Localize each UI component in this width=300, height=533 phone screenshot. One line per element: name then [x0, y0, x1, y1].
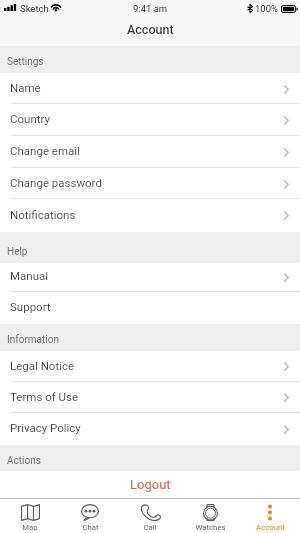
button[interactable]: Terms of Use: [0, 382, 300, 413]
staticText: Legal Notice: [10, 359, 75, 372]
staticText: Actions: [7, 455, 41, 467]
button[interactable]: Support: [0, 292, 300, 324]
button[interactable]: Chat: [60, 499, 120, 533]
button[interactable]: Call: [120, 499, 180, 533]
button[interactable]: Country: [0, 104, 300, 136]
button[interactable]: Change password: [0, 168, 300, 200]
staticText: Manual: [10, 269, 49, 282]
staticText: Watches: [195, 523, 226, 532]
staticText: Privacy Policy: [10, 421, 81, 434]
staticText: Account: [256, 523, 285, 532]
button[interactable]: Legal Notice: [0, 351, 300, 382]
button[interactable]: Logout: [0, 471, 300, 498]
staticText: Change password: [10, 176, 102, 189]
staticText: Chat: [82, 523, 99, 532]
other: Account: [266, 504, 274, 521]
staticText: Information: [7, 334, 59, 346]
button[interactable]: Watches: [180, 499, 240, 533]
staticText: Country: [10, 112, 50, 125]
staticText: Sketch: [20, 3, 49, 14]
staticText: Notifications: [10, 208, 76, 221]
staticText: Name: [10, 81, 41, 94]
staticText: Map: [22, 523, 38, 532]
button[interactable]: Manual: [0, 262, 300, 292]
staticText: 100%: [255, 3, 278, 14]
staticText: Logout: [130, 477, 171, 492]
staticText: Settings: [7, 56, 44, 68]
button[interactable]: Account: [240, 499, 300, 533]
button[interactable]: Notifications: [0, 199, 300, 232]
button[interactable]: Map: [0, 499, 60, 533]
staticText: Change email: [10, 144, 80, 157]
staticText: 9:41 am: [133, 3, 168, 14]
staticText: Help: [7, 246, 28, 258]
button[interactable]: Name: [0, 73, 300, 105]
staticText: Terms of Use: [10, 390, 79, 403]
staticText: Support: [10, 300, 51, 313]
staticText: Account: [127, 22, 174, 37]
button[interactable]: Privacy Policy: [0, 413, 300, 445]
button[interactable]: Change email: [0, 136, 300, 168]
staticText: Call: [143, 523, 157, 532]
